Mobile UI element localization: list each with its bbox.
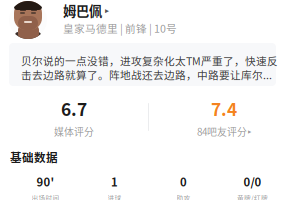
staticText: 90' <box>36 173 54 190</box>
staticText: 基础数据 <box>10 149 58 165</box>
staticText: 7.4 <box>211 96 237 121</box>
button[interactable]: 6.7 <box>0 101 148 116</box>
staticText: 媒体评分 <box>54 124 94 139</box>
staticText: 6.7 <box>61 96 87 121</box>
button[interactable]: 7.4 <box>150 101 298 116</box>
staticText: 0 <box>180 173 187 190</box>
button[interactable] <box>9 43 276 86</box>
staticText: 黄牌/红牌 <box>237 193 268 200</box>
staticText: 84吧友评分 <box>197 124 247 139</box>
staticText: 姆巴佩 <box>63 1 102 20</box>
staticText: 皇家马德里 | 前锋 | 10号 <box>63 20 177 36</box>
staticText: ▸ <box>105 6 109 15</box>
staticText: 0/0 <box>243 173 261 190</box>
staticText: 助攻 <box>176 193 190 200</box>
staticText: 击去边路就算了。阵地战还去边路，中路要让库尔... <box>21 67 272 82</box>
staticText: 出场时间 <box>31 193 59 200</box>
button[interactable]: 84吧友评分 <box>150 126 298 137</box>
staticText: ▸ <box>248 128 251 135</box>
button[interactable]: 媒体评分 <box>0 126 148 137</box>
staticText: 贝尔说的一点没错，进攻复杂化太TM严重了，快速反 <box>21 53 278 68</box>
staticText: 进球 <box>107 193 121 200</box>
button[interactable]: 姆巴佩 <box>63 3 109 18</box>
staticText: 1 <box>111 173 118 190</box>
